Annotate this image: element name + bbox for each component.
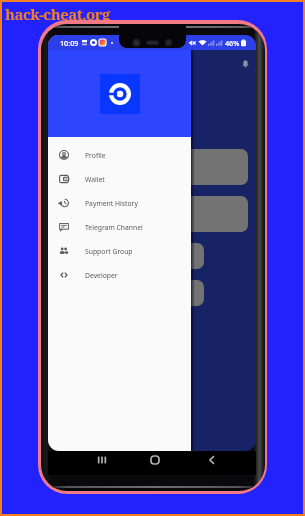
button[interactable]: Support Group	[48, 239, 191, 263]
button[interactable]: Recents	[93, 451, 111, 469]
staticText: 46%	[225, 38, 240, 48]
staticText: Wallet	[85, 175, 105, 184]
staticText: 10:09	[60, 38, 79, 48]
button[interactable]	[60, 149, 248, 185]
button[interactable]: Notifications	[237, 55, 253, 71]
button[interactable]: Developer	[48, 263, 191, 287]
staticText: Payment History	[85, 199, 138, 208]
button[interactable]: Profile	[48, 143, 191, 167]
button[interactable]: Home	[146, 451, 164, 469]
staticText: Support Group	[85, 247, 133, 256]
staticText: Developer	[85, 271, 118, 280]
button[interactable]	[60, 196, 248, 232]
button[interactable]: Payment History	[48, 191, 191, 215]
button[interactable]	[60, 243, 204, 269]
button[interactable]	[60, 280, 204, 306]
button[interactable]: Back	[203, 451, 221, 469]
button[interactable]: Telegram Channel	[48, 215, 191, 239]
staticText: Telegram Channel	[85, 223, 143, 232]
staticText: hack-cheat.org	[5, 4, 110, 24]
staticText: Profile	[85, 151, 106, 160]
button[interactable]: Wallet	[48, 167, 191, 191]
